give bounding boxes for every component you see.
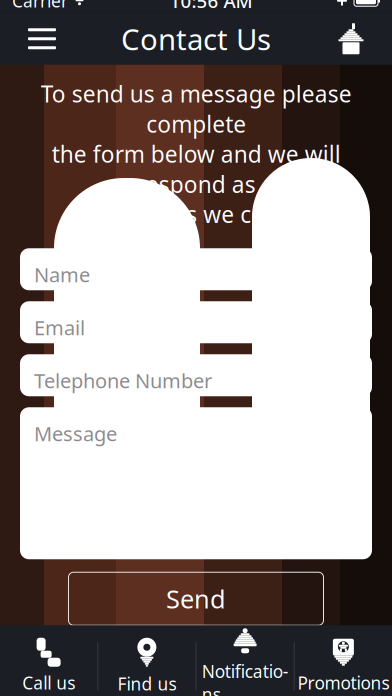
staticText: Find us <box>117 672 176 695</box>
button[interactable]: Message <box>20 407 372 559</box>
staticText: Carrier <box>12 0 68 12</box>
staticText: Contact Us <box>121 19 271 58</box>
button[interactable]: Telephone Number <box>20 354 372 396</box>
button[interactable]: Find us <box>98 625 195 696</box>
button[interactable]: Notifications <box>196 625 294 696</box>
staticText: Message <box>34 420 117 447</box>
button[interactable]: Call us <box>0 625 97 696</box>
staticText: Telephone Number <box>34 367 212 394</box>
button[interactable]: Email <box>20 301 372 343</box>
button[interactable]: Promotions <box>295 625 392 696</box>
button[interactable]: Name <box>20 248 372 290</box>
button[interactable]: Menu <box>14 13 70 65</box>
staticText: Send <box>166 582 226 615</box>
staticText: Call us <box>22 671 75 694</box>
staticText: Email <box>34 314 85 341</box>
staticText: Name <box>34 261 90 288</box>
staticText: To send us a message please complete the… <box>40 79 351 229</box>
staticText: Promotions <box>297 671 389 694</box>
button[interactable]: Send <box>68 572 323 625</box>
button[interactable]: Home <box>324 13 378 65</box>
staticText: 10:56 AM <box>169 0 252 13</box>
staticText: Notifications <box>202 660 289 696</box>
